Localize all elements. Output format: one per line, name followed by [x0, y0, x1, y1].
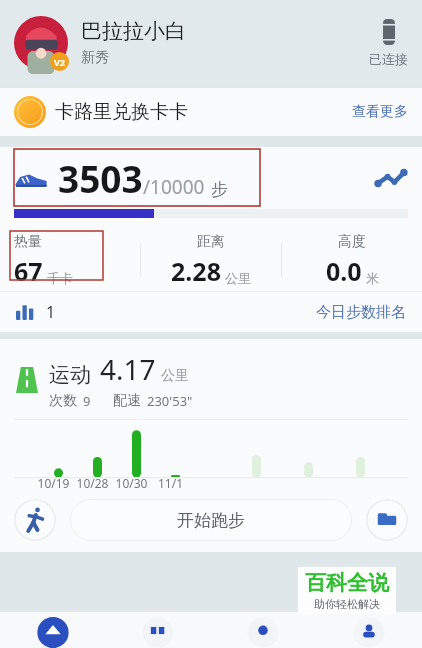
button[interactable]: 卡路里兑换卡卡 — [0, 88, 422, 136]
staticText: 0.0 — [326, 254, 362, 288]
other: Device connected — [383, 19, 395, 45]
staticText: 次数 — [49, 392, 77, 410]
staticText: 1 — [46, 301, 56, 323]
staticText: 11/1 — [151, 475, 190, 491]
staticText: 新秀 — [81, 49, 109, 67]
staticText: 助你轻松解决 — [314, 597, 380, 611]
staticText: 4.17 — [100, 350, 156, 388]
staticText: 开始跑步 — [177, 510, 245, 531]
button[interactable]: 运动 — [0, 350, 422, 410]
staticText: 距离 — [197, 233, 225, 251]
staticText: 2.28 — [171, 254, 221, 288]
button[interactable]: 3503 — [0, 147, 422, 209]
staticText: 230'53" — [147, 392, 193, 410]
staticText: 3503 — [58, 153, 143, 203]
button[interactable]: V2 — [0, 0, 422, 85]
staticText: /10000 — [143, 174, 205, 200]
staticText: 10/30 — [112, 475, 151, 491]
staticText: 卡路里兑换卡卡 — [55, 100, 188, 124]
staticText: 今日步数排名 — [316, 303, 406, 322]
staticText: 高度 — [338, 233, 366, 251]
button[interactable]: Discover — [105, 612, 210, 648]
staticText: 67 — [14, 254, 43, 288]
staticText: 9 — [83, 392, 91, 410]
staticText: 10/28 — [73, 475, 112, 491]
button[interactable]: 1 — [0, 292, 422, 332]
staticText: 步 — [211, 179, 228, 200]
staticText: 查看更多 — [352, 103, 408, 121]
staticText: 公里 — [161, 367, 189, 385]
staticText: 运动 — [49, 362, 91, 388]
button[interactable]: Device — [210, 612, 316, 648]
staticText: 配速 — [113, 392, 141, 410]
button[interactable]: 开始跑步 — [70, 499, 352, 541]
staticText: 公里 — [225, 270, 251, 286]
staticText: V2 — [54, 56, 65, 68]
staticText: 千卡 — [47, 270, 73, 286]
staticText: 米 — [366, 270, 379, 286]
staticText: 巴拉拉小白 — [81, 18, 186, 44]
button[interactable]: Home — [0, 612, 105, 648]
other: Trends — [374, 161, 408, 195]
button[interactable]: Run — [14, 499, 56, 541]
staticText: 已连接 — [369, 51, 408, 67]
staticText: 百科全说 — [305, 570, 389, 596]
staticText: 热量 — [14, 233, 42, 251]
staticText: 10/19 — [34, 475, 73, 491]
button[interactable]: History — [366, 499, 408, 541]
button[interactable]: Me — [316, 612, 422, 648]
